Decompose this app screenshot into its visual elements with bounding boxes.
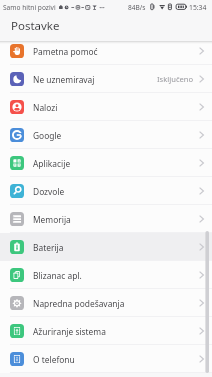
staticText: Postavke — [11, 18, 60, 34]
button[interactable]: Ne uznemiravaj — [0, 65, 212, 93]
staticText: Nalozi — [33, 102, 58, 113]
staticText: Baterija — [33, 242, 64, 253]
staticText: Memorija — [33, 214, 71, 225]
button[interactable]: Blizanac apl. — [0, 261, 212, 289]
button[interactable]: Napredna podešavanja — [0, 289, 212, 317]
staticText: Blizanac apl. — [33, 270, 82, 281]
staticText: Pametna pomoć — [33, 46, 98, 57]
button[interactable]: Baterija — [0, 233, 212, 261]
button[interactable]: Nalozi — [0, 93, 212, 121]
staticText: Aplikacije — [33, 158, 71, 169]
staticText: Samo hitni pozivi — [3, 3, 56, 12]
staticText: O telefonu — [33, 354, 75, 365]
staticText: Google — [33, 130, 62, 141]
button[interactable]: Ažuriranje sistema — [0, 317, 212, 345]
button[interactable]: Pametna pomoć — [0, 37, 212, 65]
staticText: 15:34 — [189, 3, 207, 12]
staticText: 84B/s — [128, 3, 146, 12]
button[interactable]: Memorija — [0, 205, 212, 233]
button[interactable]: Dozvole — [0, 177, 212, 205]
staticText: Napredna podešavanja — [33, 298, 125, 309]
staticText: Ažuriranje sistema — [33, 326, 106, 337]
button[interactable]: O telefonu — [0, 345, 212, 373]
button[interactable]: Aplikacije — [0, 149, 212, 177]
staticText: Isključeno — [157, 74, 194, 84]
staticText: Dozvole — [33, 186, 65, 197]
staticText: Ne uznemiravaj — [33, 74, 95, 85]
button[interactable]: Google — [0, 121, 212, 149]
